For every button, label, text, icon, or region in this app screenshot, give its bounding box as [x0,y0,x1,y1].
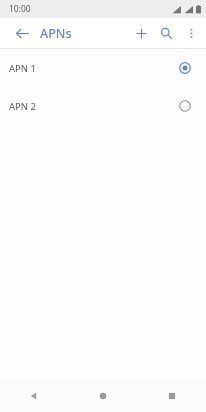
button[interactable]: Recent apps [137,380,206,412]
button[interactable]: Search [154,21,178,45]
button[interactable]: Back [0,380,68,412]
button[interactable]: More options [179,21,203,45]
staticText: APN 2 [9,100,36,113]
button[interactable]: Home [68,380,137,412]
button[interactable]: Add APN [129,21,153,45]
button[interactable]: Back [10,21,34,45]
button[interactable]: APN 1 [0,49,206,87]
button[interactable]: APN 2 [0,87,206,125]
staticText: APN 1 [9,62,36,75]
staticText: APNs [40,25,72,42]
staticText: 10:00 [9,3,31,15]
